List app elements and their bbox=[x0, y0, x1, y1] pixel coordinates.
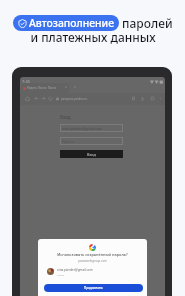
staticText: nina.pionder@gmail.com bbox=[57, 268, 93, 272]
button[interactable]: Автозаполнение bbox=[13, 15, 119, 31]
button[interactable]: Close tab bbox=[64, 85, 68, 89]
staticText: Вход bbox=[87, 152, 96, 157]
staticText: passport.yandex.ru bbox=[61, 97, 88, 101]
button[interactable]: Forward bbox=[41, 96, 46, 101]
button[interactable]: Пароль bbox=[60, 137, 123, 145]
button[interactable]: Вход bbox=[60, 150, 123, 158]
button[interactable]: Back bbox=[34, 96, 39, 101]
button[interactable]: Продолжить bbox=[44, 284, 143, 292]
staticText: и платежных данных bbox=[30, 29, 156, 45]
button[interactable]: New tab bbox=[73, 85, 77, 89]
button[interactable]: Home bbox=[25, 96, 30, 101]
button[interactable]: nina.pionder@gmail.com bbox=[47, 267, 139, 276]
button[interactable]: Reload bbox=[48, 96, 53, 101]
button[interactable]: Bookmark bbox=[131, 96, 136, 101]
staticText: Автозаполнение bbox=[29, 16, 114, 30]
button[interactable]: Extensions bbox=[150, 96, 155, 101]
button[interactable]: nina.pionder@gmail.com bbox=[60, 124, 123, 132]
staticText: Яндекс.Почта: Почта bbox=[27, 86, 57, 90]
staticText: 7:45 bbox=[22, 79, 30, 84]
staticText: паролей bbox=[119, 15, 173, 31]
staticText: •••••••• bbox=[57, 273, 65, 276]
staticText: Вход bbox=[60, 114, 71, 120]
staticText: nina.pionder@gmail.com bbox=[62, 126, 103, 131]
staticText: Пароль bbox=[62, 139, 75, 144]
button[interactable]: Secure bbox=[55, 96, 60, 101]
staticText: passwordsgroup.com bbox=[78, 259, 107, 263]
button[interactable]: Downloads bbox=[140, 96, 145, 101]
button[interactable]: Яндекс.Почта: Почта bbox=[21, 83, 69, 93]
staticText: Использовать сохранённый пароль? bbox=[57, 252, 128, 257]
staticText: Продолжить bbox=[84, 286, 103, 290]
